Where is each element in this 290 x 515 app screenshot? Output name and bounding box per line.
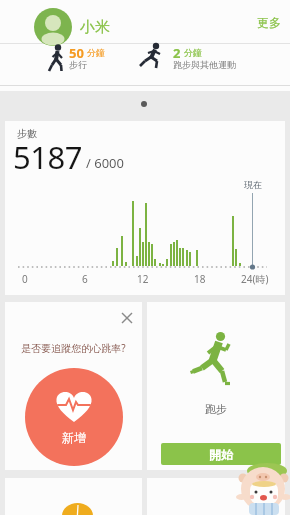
- staticText: 新增: [62, 430, 86, 445]
- button[interactable]: 新增: [25, 368, 123, 466]
- staticText: 是否要追蹤您的心跳率?: [5, 341, 142, 355]
- button[interactable]: 步數: [5, 121, 285, 295]
- button[interactable]: 更多: [248, 8, 290, 36]
- button[interactable]: [147, 478, 285, 515]
- staticText: 更多: [257, 15, 281, 30]
- staticText: 開始: [209, 447, 233, 462]
- staticText: 現在: [244, 179, 262, 190]
- staticText: 6: [82, 272, 88, 286]
- button[interactable]: 跑步: [147, 302, 285, 470]
- staticText: 步數: [17, 127, 37, 140]
- staticText: / 6000: [86, 154, 124, 172]
- button[interactable]: 是否要追蹤您的心跳率?: [5, 302, 142, 470]
- staticText: 0: [22, 272, 28, 286]
- staticText: 跑步與其他運動: [173, 59, 236, 70]
- staticText: 跑步: [147, 402, 285, 416]
- staticText: 24(時): [241, 272, 269, 286]
- staticText: 18: [194, 272, 206, 286]
- staticText: 5187: [13, 136, 82, 178]
- staticText: 50: [69, 44, 84, 62]
- button[interactable]: [5, 478, 142, 515]
- button[interactable]: 開始: [161, 443, 281, 465]
- staticText: 分鐘: [184, 47, 202, 58]
- staticText: 小米: [80, 18, 110, 37]
- staticText: 2: [173, 44, 181, 62]
- button[interactable]: [115, 306, 139, 330]
- staticText: 12: [137, 272, 149, 286]
- staticText: 分鐘: [87, 47, 105, 58]
- staticText: 步行: [69, 59, 87, 70]
